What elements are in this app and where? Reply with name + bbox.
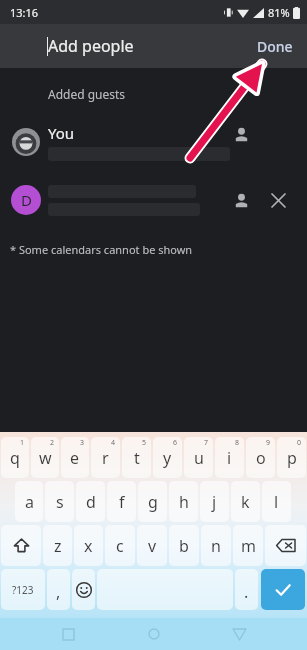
staticText: You (48, 123, 75, 143)
button[interactable]: , (47, 569, 70, 610)
button[interactable]: d (76, 481, 105, 522)
staticText: 5 (142, 438, 147, 448)
staticText: r (102, 447, 109, 469)
button[interactable]: m (233, 525, 263, 566)
staticText: o (256, 447, 266, 469)
button[interactable]: o (246, 437, 275, 478)
button[interactable]: q (1, 437, 29, 478)
staticText: i (227, 447, 232, 469)
button[interactable]: z (43, 525, 72, 566)
button[interactable]: r (91, 437, 120, 478)
button[interactable]: v (137, 525, 167, 566)
button[interactable]: n (201, 525, 231, 566)
button[interactable]: . (235, 569, 258, 610)
button[interactable]: a (15, 481, 43, 522)
button[interactable]: j (200, 481, 229, 522)
button[interactable]: y (153, 437, 182, 478)
staticText: 9 (266, 438, 271, 448)
staticText: Added guests (48, 86, 126, 102)
staticText: w (39, 447, 52, 469)
staticText: l (274, 491, 279, 513)
staticText: h (179, 491, 189, 513)
button[interactable]: u (184, 437, 213, 478)
button[interactable]: p (277, 437, 306, 478)
staticText: j (212, 491, 217, 513)
staticText: c (116, 535, 124, 557)
staticText: v (148, 535, 157, 557)
button[interactable]: Remove guest (265, 187, 291, 213)
staticText: u (194, 447, 204, 469)
button[interactable]: Home (137, 618, 171, 650)
button[interactable]: c (105, 525, 135, 566)
staticText: 4 (111, 438, 116, 448)
staticText: Add people (48, 35, 134, 57)
staticText: a (25, 491, 34, 513)
staticText: Done (257, 37, 293, 56)
staticText: 13:16 (10, 5, 39, 20)
button[interactable]: g (138, 481, 167, 522)
staticText: e (70, 447, 80, 469)
button[interactable]: t (122, 437, 151, 478)
button[interactable]: w (31, 437, 59, 478)
staticText: 81% (268, 5, 290, 20)
button[interactable]: Guest permissions (228, 187, 254, 213)
staticText: 7 (204, 438, 209, 448)
staticText: f (119, 491, 125, 513)
staticText: n (211, 535, 221, 557)
button[interactable]: Back (222, 618, 256, 650)
button[interactable]: D (0, 174, 307, 226)
staticText: , (56, 581, 61, 603)
staticText: z (54, 535, 62, 557)
button[interactable]: Guest permissions (228, 121, 254, 147)
button[interactable]: b (169, 525, 199, 566)
staticText: 3 (80, 438, 85, 448)
staticText: t (134, 447, 140, 469)
staticText: . (244, 581, 249, 603)
button[interactable]: Done (243, 27, 307, 66)
staticText: g (148, 491, 158, 513)
button[interactable]: e (61, 437, 89, 478)
button[interactable]: Enter (261, 569, 305, 610)
button[interactable]: h (169, 481, 198, 522)
button[interactable]: Emoji (72, 569, 95, 610)
staticText: * Some calendars cannot be shown (10, 242, 193, 257)
button[interactable]: k (231, 481, 260, 522)
button[interactable]: l (262, 481, 291, 522)
button[interactable]: Recents (51, 618, 85, 650)
button[interactable]: i (215, 437, 244, 478)
button[interactable]: f (107, 481, 136, 522)
staticText: 6 (173, 438, 178, 448)
staticText: 2 (50, 438, 55, 448)
button[interactable] (97, 569, 233, 610)
button[interactable]: You (0, 116, 307, 168)
staticText: D (21, 190, 32, 210)
button[interactable]: x (74, 525, 103, 566)
staticText: s (56, 491, 64, 513)
button[interactable]: Backspace (265, 525, 306, 566)
staticText: b (179, 535, 189, 557)
staticText: p (287, 447, 297, 469)
staticText: ?123 (12, 583, 34, 597)
staticText: y (163, 447, 172, 469)
button[interactable]: s (45, 481, 74, 522)
staticText: d (86, 491, 96, 513)
staticText: x (84, 535, 93, 557)
staticText: 8 (235, 438, 240, 448)
staticText: q (10, 447, 20, 469)
staticText: m (241, 535, 256, 557)
button[interactable]: Shift (1, 525, 41, 566)
staticText: 0 (297, 438, 302, 448)
staticText: 1 (20, 438, 25, 448)
button[interactable]: ?123 (1, 569, 45, 610)
staticText: k (241, 491, 250, 513)
